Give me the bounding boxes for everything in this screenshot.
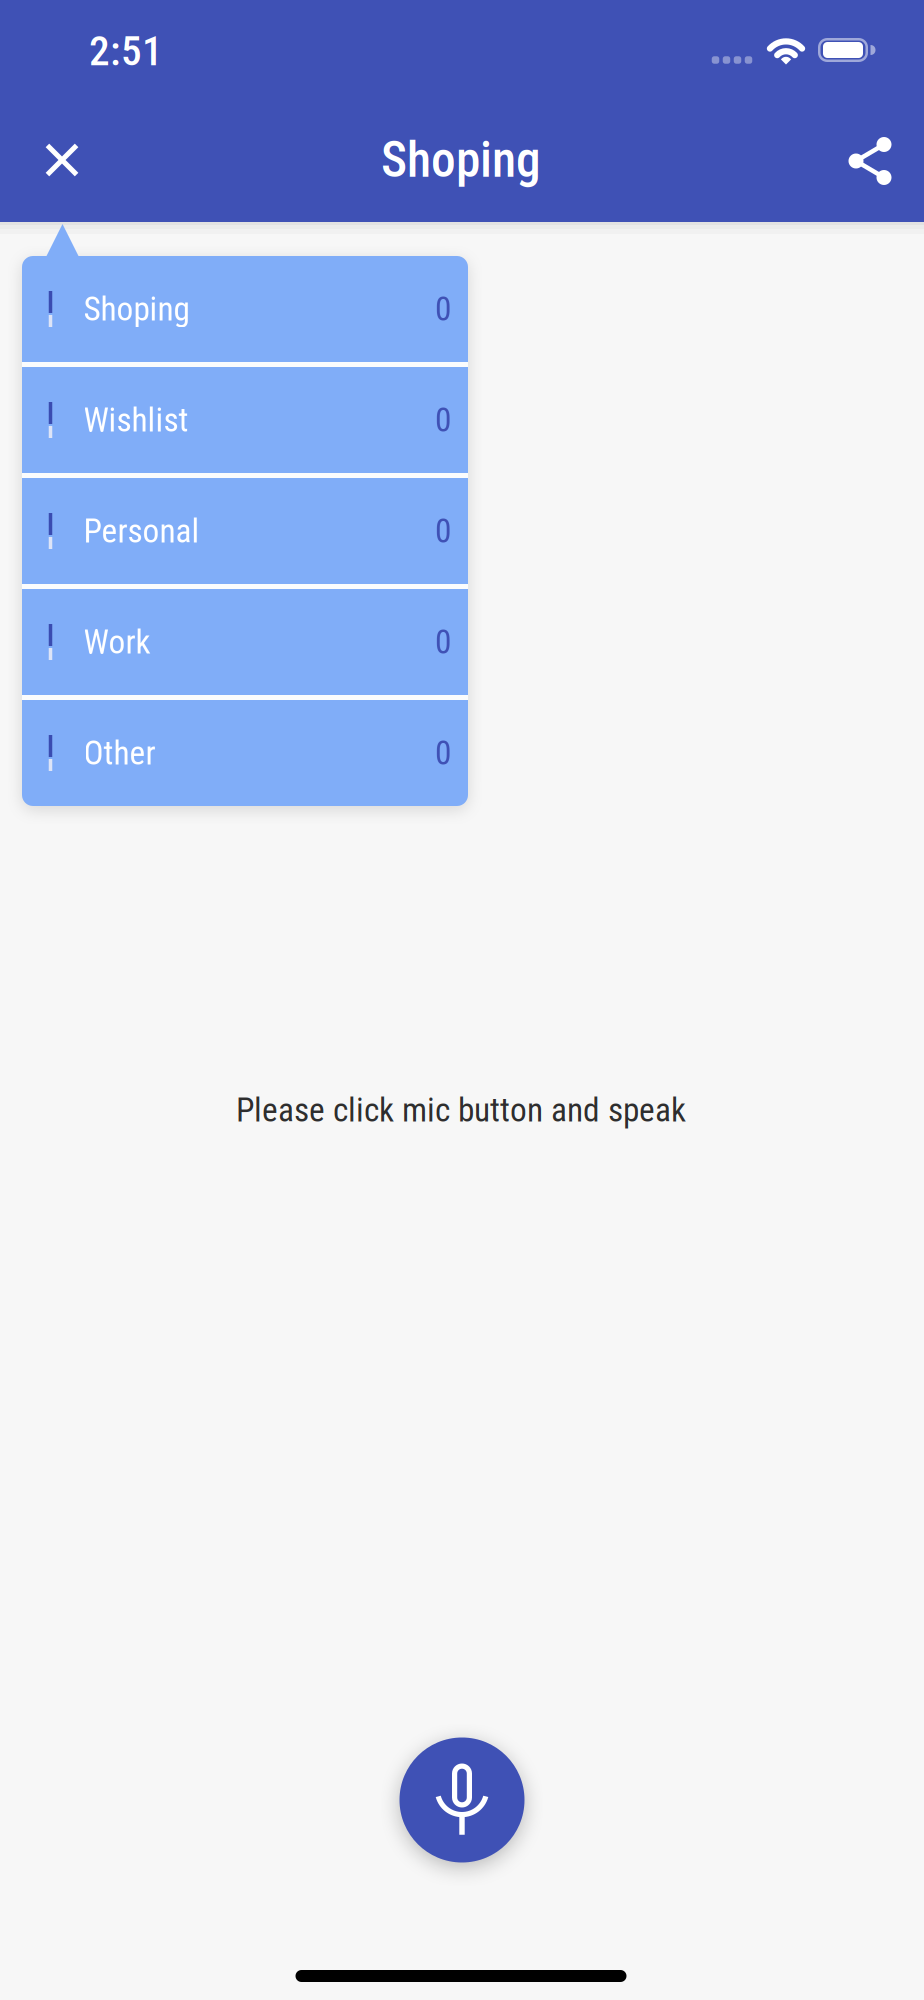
staticText: 0 [435,400,451,440]
staticText: Work [83,622,150,662]
staticText: Please click mic button and speak [236,1090,686,1130]
button[interactable]: Shoping [22,256,468,362]
button[interactable]: Close [32,130,92,190]
staticText: 0 [435,733,451,773]
staticText: Wishlist [83,400,188,440]
button[interactable]: Share [840,131,900,191]
staticText: 2:51 [89,27,163,75]
button[interactable]: Wishlist [22,367,468,473]
staticText: Personal [83,511,199,551]
staticText: Shoping [83,289,189,329]
button[interactable]: Work [22,589,468,695]
staticText: Other [83,733,155,773]
staticText: 0 [435,622,451,662]
button[interactable]: Microphone [399,1737,524,1862]
staticText: 0 [435,511,451,551]
button[interactable]: Personal [22,478,468,584]
staticText: 0 [435,289,451,329]
button[interactable]: Other [22,700,468,806]
staticText: Shoping [381,131,541,189]
